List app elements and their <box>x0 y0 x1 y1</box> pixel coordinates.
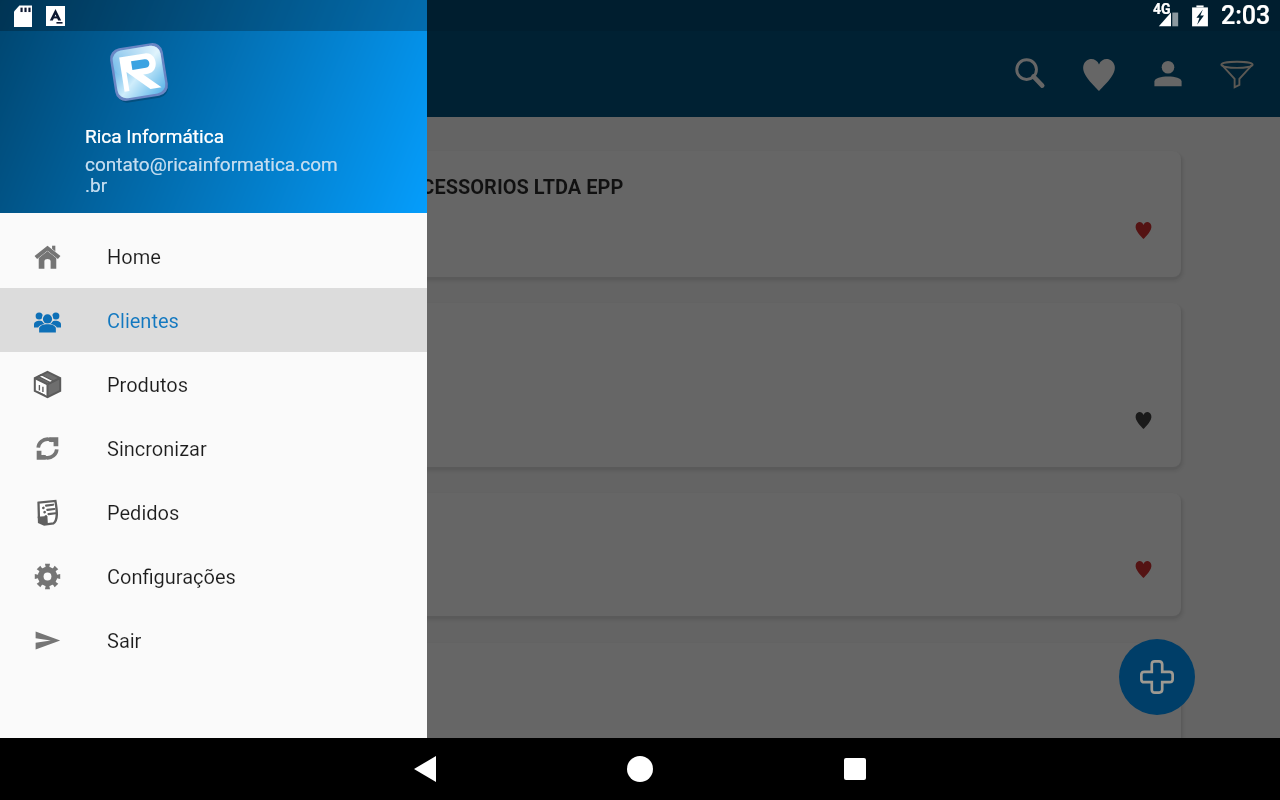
staticText: Sair <box>107 629 142 652</box>
button[interactable]: Home <box>0 224 427 288</box>
staticText: Rica Informática <box>85 125 224 147</box>
staticText: Clientes <box>107 309 179 332</box>
button[interactable]: Configurações <box>0 544 427 608</box>
staticText: Produtos <box>107 373 188 396</box>
button[interactable]: Adicionar cliente <box>1119 639 1195 715</box>
button[interactable]: Sair <box>0 608 427 672</box>
staticText: Pedidos <box>107 501 180 524</box>
staticText: contato@ricainformatica.com .br <box>85 153 338 196</box>
button[interactable]: Produtos <box>0 352 427 416</box>
button[interactable]: Clientes <box>0 288 427 352</box>
button[interactable]: CLIENTE <box>8 303 1181 467</box>
button[interactable]: Início <box>612 741 668 797</box>
button[interactable]: Favoritos <box>1064 31 1133 117</box>
button[interactable]: MEGATRON COMERCIO IMPORTACAO DE ACESSORI… <box>8 151 1181 277</box>
staticText: Sincronizar <box>107 437 207 460</box>
button[interactable]: Filtrar <box>1202 31 1271 117</box>
button[interactable]: CLIENTE <box>8 493 1181 616</box>
button[interactable]: Sincronizar <box>0 416 427 480</box>
staticText: MEGATRON COMERCIO IMPORTACAO DE ACESSORI… <box>28 175 624 198</box>
button[interactable]: Recentes <box>827 741 883 797</box>
button[interactable]: Pesquisar <box>995 31 1064 117</box>
button[interactable]: CLIENTE <box>8 643 1181 800</box>
staticText: Home <box>107 245 161 268</box>
button[interactable]: Conta <box>1133 31 1202 117</box>
staticText: CLIENTE <box>28 327 107 350</box>
staticText: 2:03 <box>1221 1 1271 30</box>
button[interactable]: Pedidos <box>0 480 427 544</box>
staticText: CLIENTE <box>28 517 107 540</box>
button[interactable]: Voltar <box>397 741 453 797</box>
staticText: 4G <box>1153 1 1171 17</box>
staticText: Configurações <box>107 565 236 588</box>
